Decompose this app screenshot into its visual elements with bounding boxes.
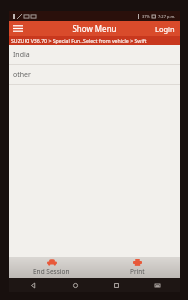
staticText: 7:27 p.m. — [158, 14, 176, 19]
button[interactable]: other — [9, 65, 180, 85]
button[interactable]: Open navigation menu — [9, 21, 27, 36]
button[interactable]: Recents — [109, 278, 123, 292]
staticText: other — [13, 70, 31, 80]
button[interactable]: Back — [26, 278, 40, 292]
staticText: End Session — [33, 267, 70, 276]
staticText: Login — [155, 24, 175, 34]
staticText: India — [13, 50, 30, 60]
button[interactable]: Login — [150, 21, 180, 36]
button[interactable]: Home — [68, 278, 82, 292]
button[interactable]: India — [9, 45, 180, 65]
staticText: 37% — [142, 14, 150, 19]
button[interactable]: Screenshot — [150, 278, 164, 292]
staticText: SUZUKI V36.70 > Special Fun..Select from… — [11, 37, 147, 44]
staticText: Show Menu — [72, 23, 117, 34]
button[interactable]: End Session — [9, 257, 94, 278]
button[interactable]: Print — [94, 257, 180, 278]
staticText: Print — [130, 267, 145, 276]
